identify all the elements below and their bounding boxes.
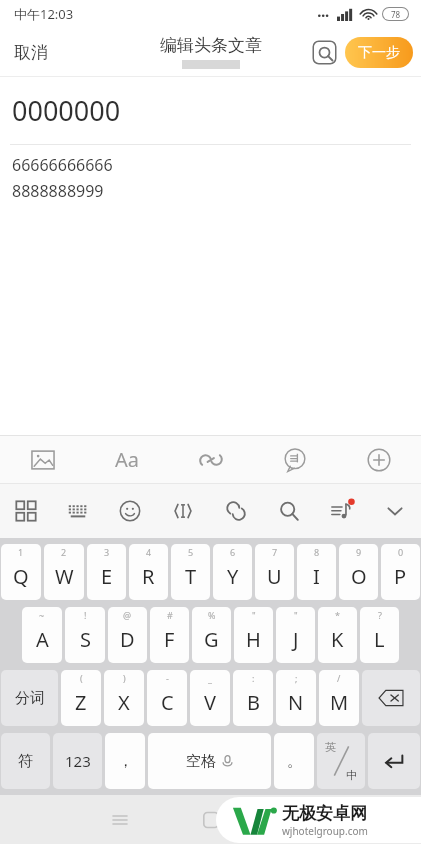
staticText: ; [295, 672, 298, 684]
button[interactable]: Music [315, 484, 368, 538]
staticText: J [293, 626, 299, 653]
button[interactable]: Add [337, 436, 421, 483]
button[interactable]: ? [360, 607, 399, 663]
staticText: / [337, 672, 341, 684]
button[interactable]: Menu [105, 805, 135, 835]
staticText: P [394, 563, 407, 590]
button[interactable]: Attach [209, 484, 262, 538]
button[interactable]: * [318, 607, 357, 663]
staticText: 无极安卓网 [282, 803, 367, 824]
staticText: B [247, 689, 260, 716]
staticText: Q [13, 563, 29, 590]
button[interactable]: 。 [274, 733, 314, 789]
staticText: : [252, 672, 255, 684]
button[interactable]: 8 [297, 544, 336, 600]
staticText: 编辑头条文章 [160, 35, 262, 56]
button[interactable]: Search [307, 35, 341, 69]
staticText: N [288, 689, 304, 716]
button[interactable]: 1 [1, 544, 41, 600]
staticText: ~ [39, 609, 45, 621]
button[interactable]: Comment [253, 436, 337, 483]
staticText: - [166, 672, 169, 684]
staticText: S [80, 626, 91, 653]
button[interactable]: Keyboard [52, 484, 104, 538]
button[interactable]: Recents [196, 805, 226, 835]
staticText: C [161, 689, 174, 716]
button[interactable]: ) [104, 670, 144, 726]
button[interactable]: ( [61, 670, 101, 726]
button[interactable]: 123 [53, 733, 102, 789]
button[interactable]: Cursor [156, 484, 209, 538]
staticText: 5 [188, 546, 194, 558]
staticText: ? [378, 609, 382, 621]
button[interactable]: _ [190, 670, 230, 726]
staticText: Aa [115, 446, 139, 473]
button[interactable]: Insert image [0, 436, 85, 483]
staticText: V [204, 689, 216, 716]
staticText: A [36, 626, 49, 653]
staticText: 78 [391, 9, 401, 20]
staticText: 中 [346, 768, 357, 782]
button[interactable]: ， [105, 733, 145, 789]
button[interactable]: Backspace [362, 670, 420, 726]
staticText: 8 [314, 546, 320, 558]
staticText: 。 [287, 752, 302, 771]
button[interactable]: Collapse keyboard [368, 484, 421, 538]
staticText: K [331, 626, 344, 653]
staticText: G [204, 626, 219, 653]
button[interactable]: 5 [171, 544, 210, 600]
button[interactable]: @ [108, 607, 147, 663]
button[interactable]: 取消 [0, 28, 62, 76]
button[interactable]: Emoji [104, 484, 156, 538]
button[interactable]: " [234, 607, 273, 663]
button[interactable]: Enter [368, 733, 420, 789]
button[interactable]: 空格 [148, 733, 271, 789]
button[interactable]: 6 [213, 544, 252, 600]
button[interactable]: : [233, 670, 273, 726]
staticText: I [313, 563, 320, 590]
staticText: 66666666666 [12, 154, 113, 176]
button[interactable]: Insert link [169, 436, 253, 483]
staticText: 下一步 [358, 44, 400, 62]
staticText: 3 [104, 546, 110, 558]
button[interactable]: 2 [44, 544, 84, 600]
staticText: M [330, 689, 349, 716]
button[interactable]: 3 [87, 544, 126, 600]
button[interactable]: / [319, 670, 359, 726]
button[interactable]: 7 [255, 544, 294, 600]
button[interactable]: " [276, 607, 315, 663]
staticText: 取消 [14, 42, 48, 63]
staticText: _ [208, 672, 212, 684]
button[interactable]: ~ [22, 607, 62, 663]
button[interactable]: 分词 [1, 670, 58, 726]
button[interactable]: Apps [0, 484, 52, 538]
staticText: @ [123, 609, 132, 621]
button[interactable]: # [150, 607, 189, 663]
staticText: U [267, 563, 282, 590]
button[interactable]: Text format [85, 436, 169, 483]
staticText: D [120, 626, 135, 653]
staticText: 分词 [15, 689, 45, 708]
staticText: 123 [65, 751, 91, 771]
button[interactable]: 下一步 [345, 37, 413, 68]
button[interactable]: % [192, 607, 231, 663]
button[interactable]: ! [65, 607, 105, 663]
button[interactable]: Search [262, 484, 315, 538]
button[interactable]: Switch language [317, 733, 365, 789]
staticText: ， [118, 752, 133, 771]
staticText: Y [227, 563, 239, 590]
button[interactable]: 0 [381, 544, 420, 600]
button[interactable]: ; [276, 670, 316, 726]
staticText: ! [84, 609, 87, 621]
staticText: 4 [146, 546, 152, 558]
button[interactable]: 9 [339, 544, 378, 600]
staticText: 0000000 [12, 92, 121, 129]
button[interactable]: 4 [129, 544, 168, 600]
staticText: ( [80, 672, 83, 684]
button[interactable]: 符 [1, 733, 50, 789]
staticText: X [118, 689, 130, 716]
staticText: H [246, 626, 261, 653]
staticText: 符 [18, 752, 33, 771]
staticText: 6 [230, 546, 236, 558]
button[interactable]: - [147, 670, 187, 726]
